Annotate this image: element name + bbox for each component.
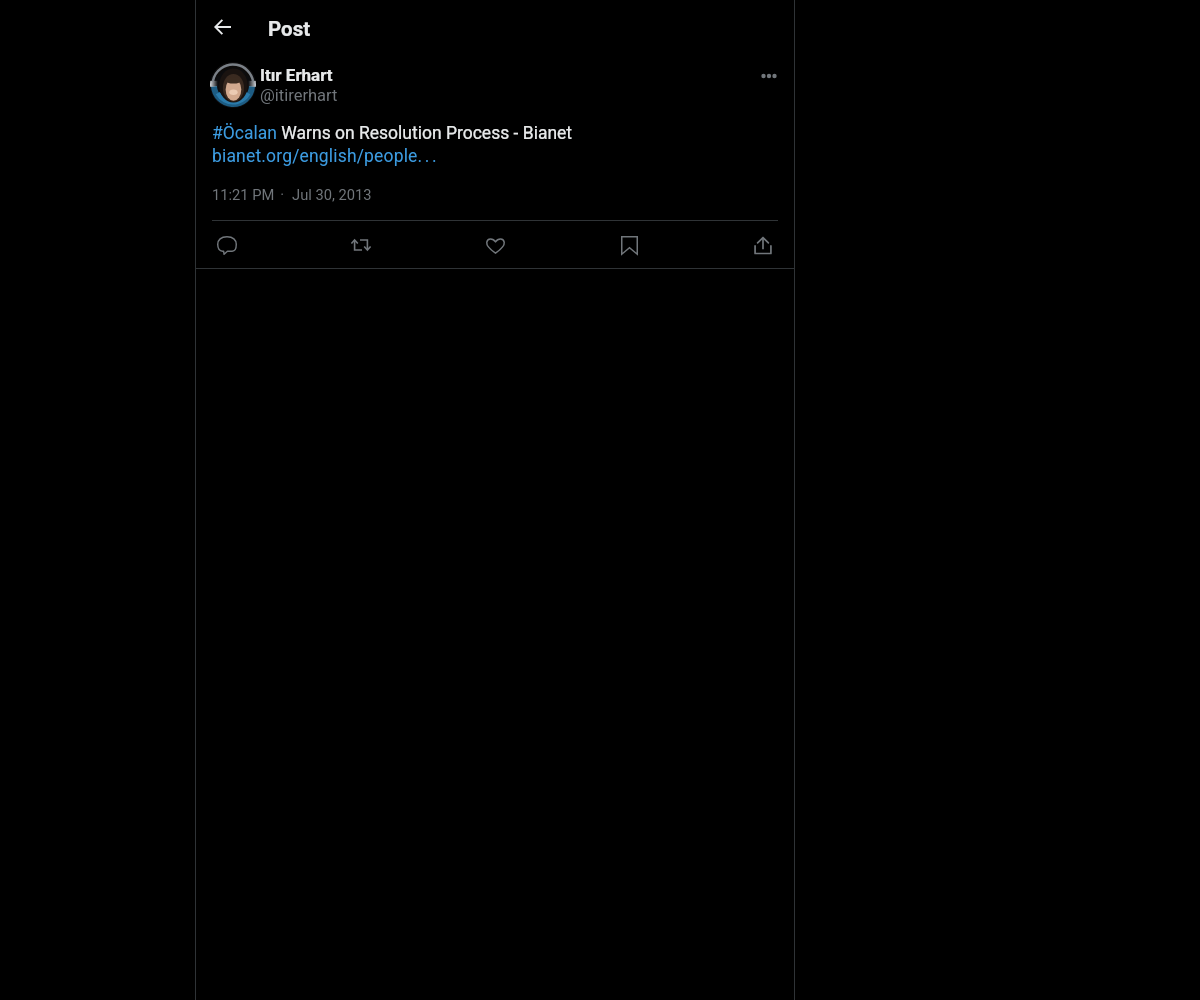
button[interactable]: Like	[480, 230, 510, 260]
button[interactable]: Share	[748, 230, 778, 260]
button[interactable]: Reply	[212, 230, 242, 260]
button[interactable]: Back	[205, 9, 241, 45]
button[interactable]: Itır Erhart	[260, 65, 333, 85]
staticText: 11:21 PM · Jul 30, 2013	[212, 186, 372, 203]
button[interactable]: #Öcalan Warns on Resolution Process - Bi…	[212, 123, 573, 166]
button[interactable]: Bookmark	[614, 230, 644, 260]
button[interactable]: @itirerhart	[260, 86, 338, 105]
staticText: Post	[268, 17, 311, 41]
button[interactable]: Repost	[346, 230, 376, 260]
button[interactable]: Profile photo	[210, 62, 256, 108]
button[interactable]: More options	[752, 59, 786, 93]
